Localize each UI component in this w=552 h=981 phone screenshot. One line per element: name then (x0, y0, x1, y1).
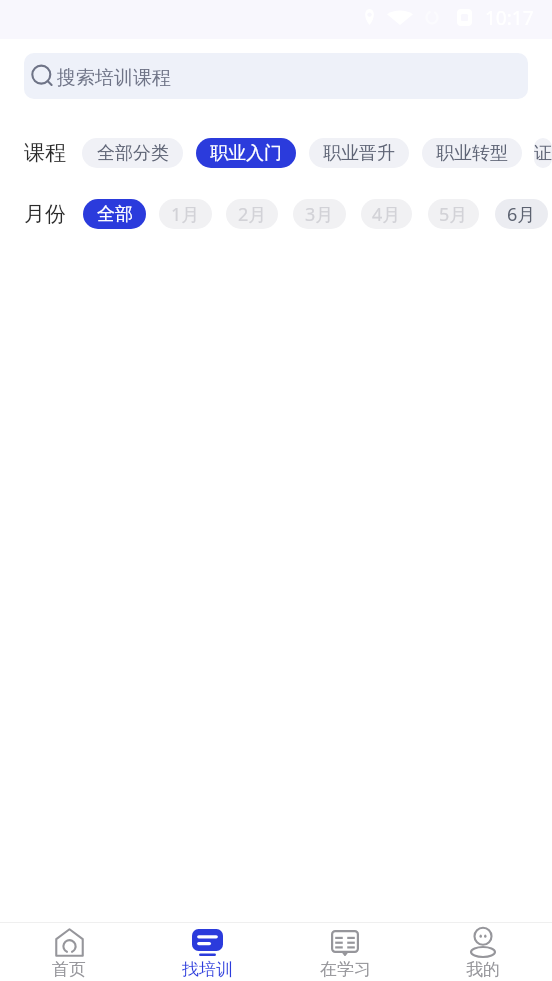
button[interactable]: 职业入门 (196, 138, 296, 168)
button[interactable]: 4月 (361, 199, 412, 229)
staticText: 首页 (52, 959, 86, 980)
other: 首页 (55, 928, 84, 957)
staticText: 搜索培训课程 (57, 66, 171, 90)
staticText: 2月 (238, 202, 267, 227)
button[interactable]: 全部分类 (82, 138, 183, 168)
button[interactable]: 职业转型 (422, 138, 522, 168)
staticText: 1月 (171, 202, 200, 227)
button[interactable]: 我的 (414, 923, 552, 981)
staticText: 3月 (305, 202, 334, 227)
button[interactable]: 职业晋升 (309, 138, 409, 168)
staticText: 全部分类 (97, 142, 169, 165)
staticText: 我的 (466, 959, 500, 980)
button[interactable]: 3月 (293, 199, 346, 229)
button[interactable]: 2月 (226, 199, 278, 229)
staticText: 月份 (24, 201, 66, 227)
button[interactable]: 5月 (428, 199, 479, 229)
button[interactable]: 在学习 (276, 923, 414, 981)
other: 找培训 (192, 929, 223, 956)
staticText: 职业晋升 (323, 142, 395, 165)
staticText: 找培训 (182, 959, 233, 980)
button[interactable]: 1月 (159, 199, 212, 229)
other: 在学习 (331, 930, 359, 956)
staticText: 4月 (372, 202, 401, 227)
button[interactable]: 首页 (0, 923, 138, 981)
staticText: 全部 (97, 203, 133, 226)
button[interactable]: 6月 (495, 199, 548, 229)
button[interactable]: 找培训 (138, 923, 276, 981)
staticText: 职业转型 (436, 142, 508, 165)
staticText: 证件 (534, 142, 552, 165)
button[interactable]: 搜索培训课程 (24, 53, 528, 99)
staticText: 在学习 (320, 959, 371, 980)
button[interactable]: 证件 (534, 138, 552, 168)
staticText: 职业入门 (210, 142, 282, 165)
staticText: 5月 (439, 202, 468, 227)
button[interactable]: 全部 (83, 199, 146, 229)
staticText: 课程 (24, 140, 66, 166)
staticText: 6月 (507, 202, 536, 227)
other: 我的 (471, 928, 495, 957)
